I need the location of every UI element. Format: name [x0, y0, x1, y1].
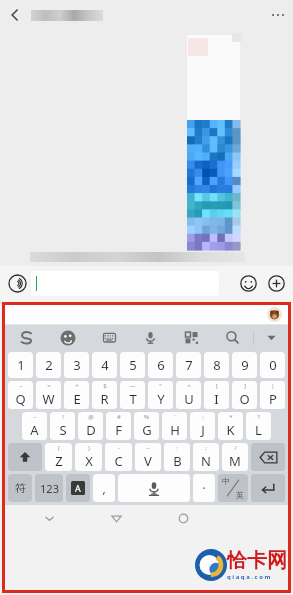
button[interactable]: Sogou input: [5, 325, 47, 350]
button[interactable]: 4: [92, 352, 117, 378]
staticText: (: [58, 444, 60, 452]
button[interactable]: !: [50, 412, 75, 440]
button[interactable]: (: [45, 443, 72, 471]
button[interactable]: ~: [22, 412, 47, 440]
staticText: 9: [241, 356, 249, 374]
button[interactable]: [: [204, 381, 229, 409]
button[interactable]: More functions: [262, 269, 290, 297]
button[interactable]: Voice: [130, 325, 171, 350]
staticText: $: [103, 382, 107, 390]
button[interactable]: %: [134, 412, 159, 440]
button[interactable]: 123: [35, 474, 63, 502]
button[interactable]: -: [105, 443, 132, 471]
button[interactable]: 3: [64, 352, 89, 378]
button[interactable]: Home: [150, 505, 217, 531]
staticText: ^: [187, 382, 191, 390]
button[interactable]: Input language: [66, 474, 90, 502]
button[interactable]: More options: [263, 0, 293, 30]
button[interactable]: 符: [8, 474, 32, 502]
button[interactable]: Space: [118, 474, 190, 502]
button[interactable]: 6: [148, 352, 173, 378]
staticText: 0: [269, 356, 277, 374]
staticText: ~: [19, 382, 23, 390]
staticText: A: [75, 482, 81, 494]
button[interactable]: 9: [232, 352, 257, 378]
button[interactable]: 0: [260, 352, 285, 378]
staticText: 123: [40, 481, 59, 496]
staticText: [: [216, 382, 218, 390]
button[interactable]: ~: [135, 443, 161, 471]
button[interactable]: +: [64, 381, 89, 409]
button[interactable]: Backspace: [251, 443, 285, 471]
staticText: :: [176, 444, 178, 452]
staticText: #: [117, 413, 121, 421]
staticText: E: [73, 390, 81, 408]
button[interactable]: ·: [193, 474, 215, 502]
button[interactable]: Back: [83, 505, 150, 531]
button[interactable]: [31, 271, 219, 296]
staticText: H: [170, 421, 180, 439]
staticText: L: [255, 421, 262, 439]
button[interactable]: ^: [176, 381, 201, 409]
button[interactable]: Emoji: [47, 325, 89, 350]
button[interactable]: ": [148, 381, 173, 409]
staticText: ": [159, 382, 162, 390]
button[interactable]: |: [260, 381, 285, 409]
staticText: ): [88, 444, 90, 452]
button[interactable]: 1: [8, 352, 33, 378]
staticText: U: [184, 390, 194, 408]
button[interactable]: ': [162, 412, 187, 440]
staticText: 7: [185, 356, 193, 374]
staticText: =: [47, 382, 51, 390]
button[interactable]: 5: [120, 352, 145, 378]
staticText: 英: [236, 490, 244, 500]
button[interactable]: ]: [232, 381, 257, 409]
staticText: ·: [202, 480, 206, 496]
button[interactable]: Collapse toolbar: [254, 325, 288, 350]
button[interactable]: :: [190, 412, 215, 440]
button[interactable]: ?: [246, 412, 271, 440]
button[interactable]: Scan: [171, 325, 212, 350]
button[interactable]: /: [222, 443, 248, 471]
button[interactable]: Enter: [251, 474, 285, 502]
button[interactable]: :: [164, 443, 190, 471]
button[interactable]: @: [78, 412, 103, 440]
staticText: ;: [205, 444, 207, 452]
staticText: F: [115, 421, 122, 439]
button[interactable]: Keyboard layout: [89, 325, 130, 350]
staticText: ~: [146, 444, 150, 452]
button[interactable]: Sogou mascot: [267, 307, 282, 322]
button[interactable]: Hide keyboard: [15, 505, 83, 531]
staticText: 3: [73, 356, 81, 374]
button[interactable]: Back: [0, 0, 30, 30]
button[interactable]: Shift: [8, 443, 42, 471]
button[interactable]: =: [36, 381, 61, 409]
button[interactable]: —: [120, 381, 145, 409]
button[interactable]: ,: [93, 474, 115, 502]
staticText: —: [129, 382, 136, 390]
button[interactable]: Switch Chinese English: [218, 474, 248, 502]
staticText: 4: [101, 356, 109, 374]
staticText: ]: [244, 382, 246, 390]
staticText: A: [30, 421, 39, 439]
button[interactable]: $: [92, 381, 117, 409]
button[interactable]: 7: [176, 352, 201, 378]
staticText: 6: [157, 356, 165, 374]
button[interactable]: *: [218, 412, 243, 440]
staticText: Z: [55, 452, 63, 470]
button[interactable]: Voice input: [4, 270, 30, 296]
button[interactable]: Search: [212, 325, 253, 350]
button[interactable]: Emoji: [234, 269, 262, 297]
button[interactable]: 2: [36, 352, 61, 378]
staticText: Y: [157, 390, 165, 408]
button[interactable]: ;: [193, 443, 219, 471]
staticText: C: [114, 452, 123, 470]
button[interactable]: 8: [204, 352, 229, 378]
staticText: R: [100, 390, 109, 408]
button[interactable]: #: [106, 412, 131, 440]
staticText: N: [201, 452, 211, 470]
button[interactable]: ): [75, 443, 102, 471]
button[interactable]: ~: [8, 381, 33, 409]
staticText: X: [85, 452, 93, 470]
staticText: 8: [213, 356, 221, 374]
